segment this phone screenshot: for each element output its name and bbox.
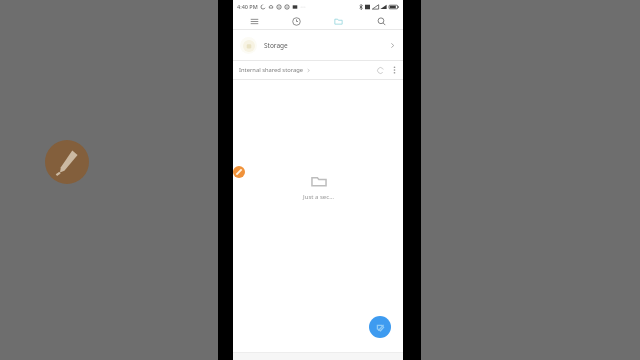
staticText: 4:40 PM <box>237 3 258 10</box>
button[interactable]: Storage <box>233 30 403 60</box>
staticText: Internal shared storage <box>239 66 304 74</box>
staticText: Storage <box>264 41 288 50</box>
button[interactable]: Internal shared storage <box>239 66 311 74</box>
button[interactable]: New <box>369 316 391 338</box>
button[interactable]: Browse files <box>317 13 360 29</box>
button[interactable]: Recent <box>275 13 317 29</box>
staticText: Just a sec… <box>303 193 334 201</box>
button[interactable]: Search <box>360 13 403 29</box>
button[interactable]: More options <box>390 63 398 77</box>
button[interactable]: Menu <box>233 13 275 29</box>
